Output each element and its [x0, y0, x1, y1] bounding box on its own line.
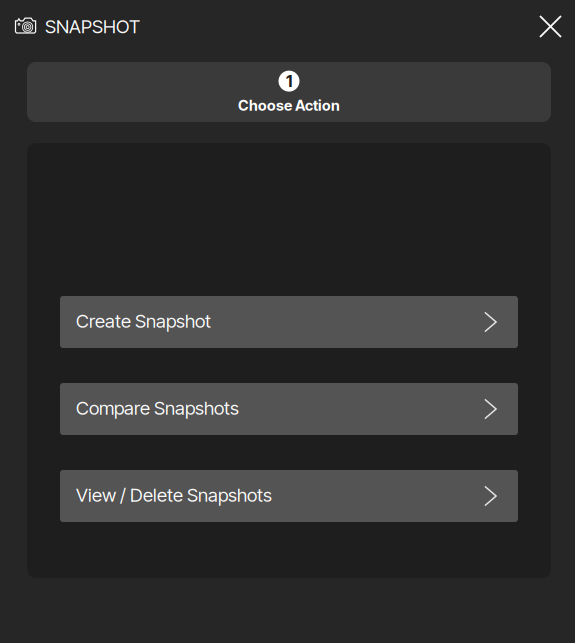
staticText: View / Delete Snapshots [76, 484, 272, 506]
button[interactable]: Close [540, 16, 561, 37]
staticText: Choose Action [238, 97, 340, 114]
staticText: SNAPSHOT [45, 15, 140, 38]
staticText: Compare Snapshots [76, 397, 239, 419]
staticText: Create Snapshot [76, 310, 211, 332]
staticText: 1 [286, 71, 292, 91]
button[interactable]: View / Delete Snapshots [60, 470, 518, 522]
button[interactable]: Create Snapshot [60, 296, 518, 348]
button[interactable]: Compare Snapshots [60, 383, 518, 435]
